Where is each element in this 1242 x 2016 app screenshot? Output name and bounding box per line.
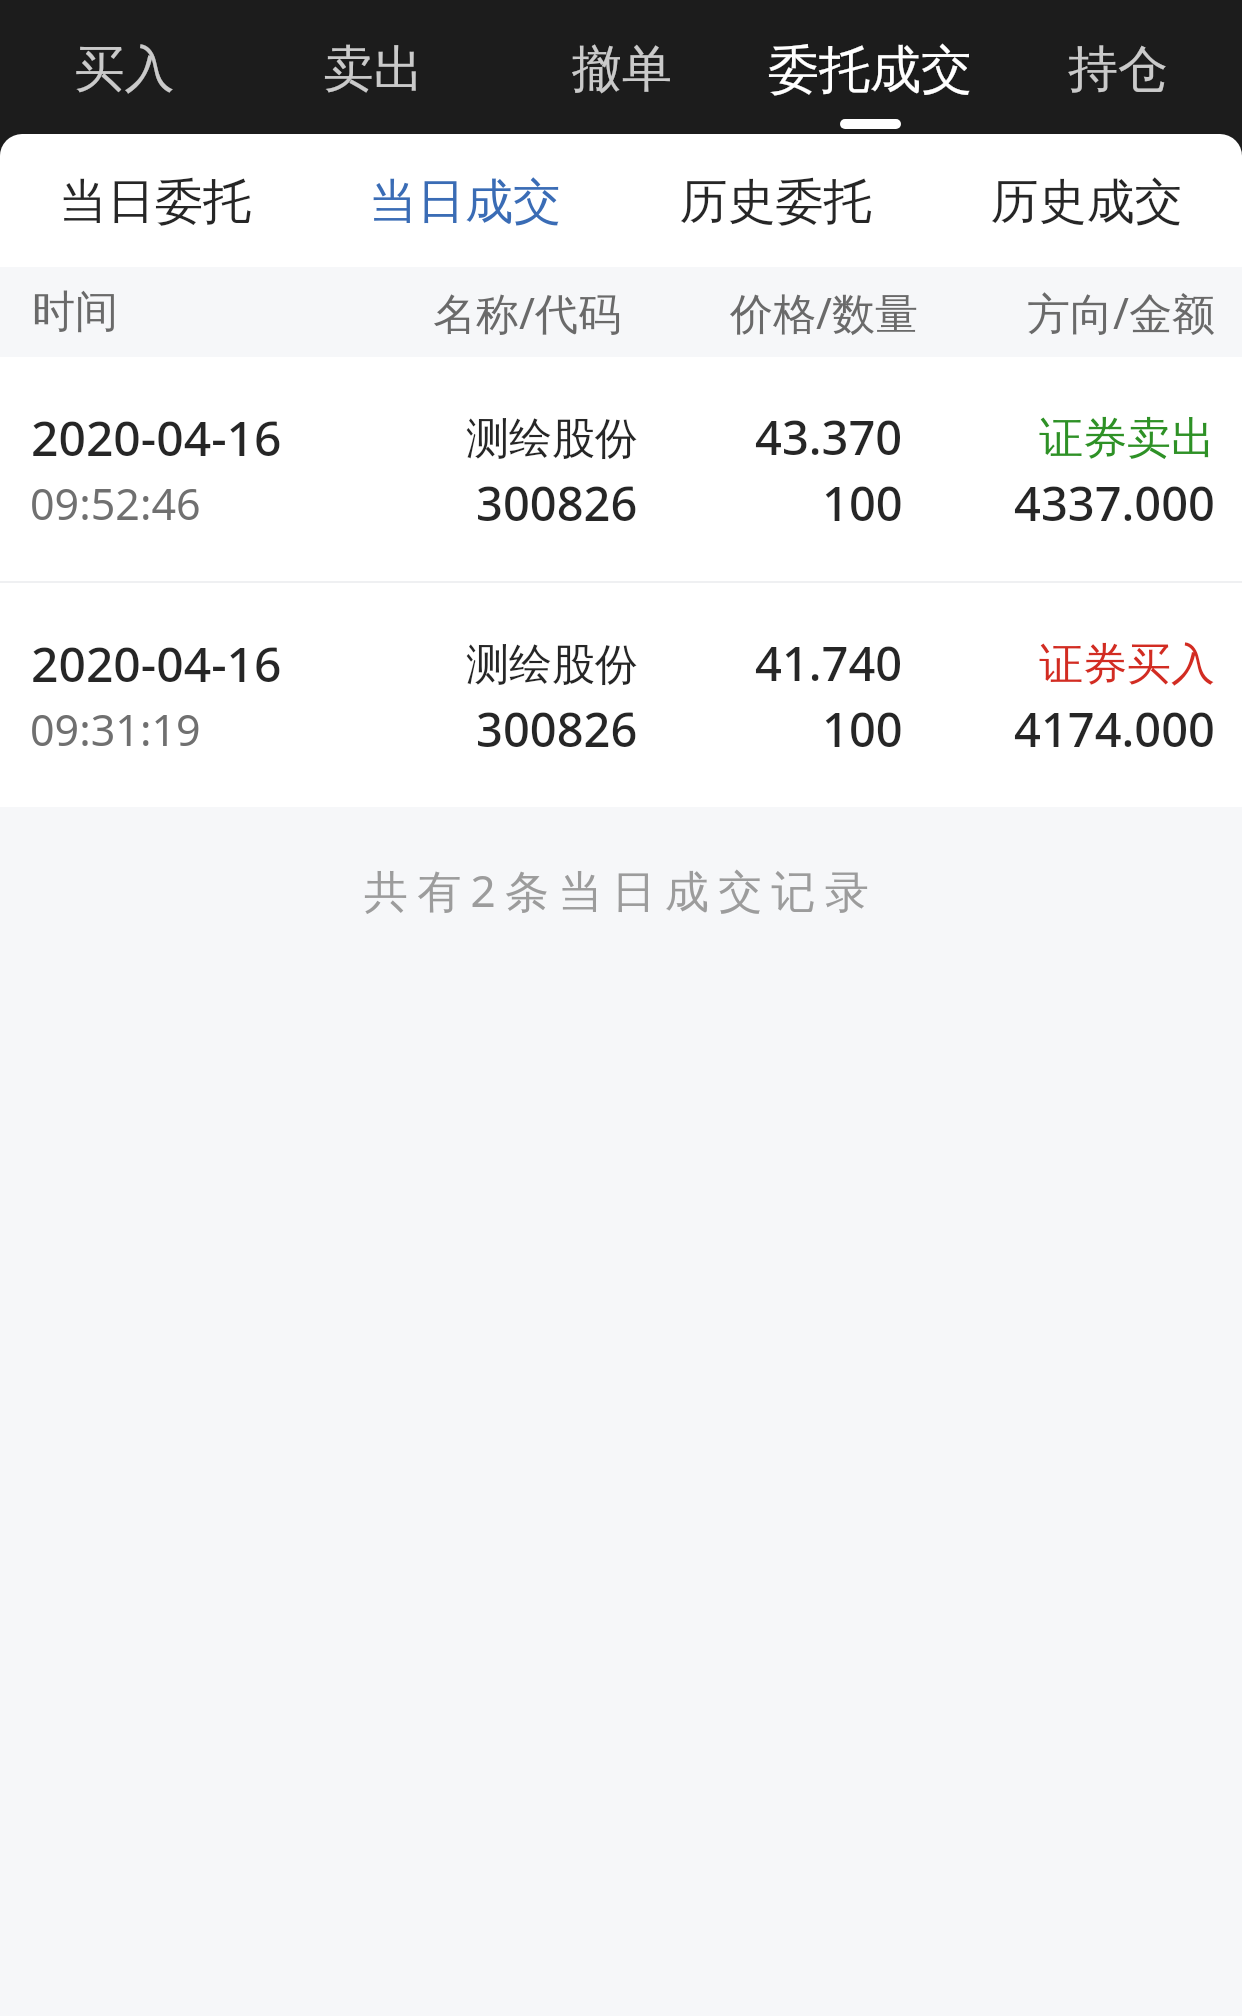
button[interactable]: 当日成交 [310, 134, 620, 267]
staticText: 买入 [0, 38, 249, 101]
staticText: 300826 [476, 471, 638, 535]
staticText: 4337.000 [1014, 471, 1215, 535]
button[interactable]: 当日委托 [0, 134, 310, 267]
staticText: 100 [822, 697, 903, 761]
staticText: 证券买入 [1039, 637, 1215, 692]
button[interactable]: 持仓 [994, 0, 1242, 134]
staticText: 测绘股份 [466, 412, 638, 466]
button[interactable]: 历史成交 [931, 134, 1242, 267]
staticText: 300826 [476, 697, 638, 761]
staticText: 时间 [32, 285, 118, 339]
button[interactable]: 买入 [0, 0, 249, 134]
staticText: 2020-04-16 [31, 631, 282, 696]
staticText: 41.740 [755, 631, 903, 695]
staticText: 历史委托 [620, 172, 931, 232]
other: Selected tab indicator [840, 119, 901, 129]
button[interactable]: 2020-04-16 [0, 357, 1242, 581]
staticText: 价格/数量 [730, 283, 918, 342]
staticText: 43.370 [755, 405, 903, 469]
staticText: 持仓 [994, 38, 1242, 101]
staticText: 卖出 [249, 38, 498, 101]
staticText: 测绘股份 [466, 638, 638, 692]
button[interactable]: 卖出 [249, 0, 498, 134]
staticText: 共有2条当日成交记录 [364, 860, 879, 920]
staticText: 当日成交 [310, 172, 620, 232]
staticText: 撤单 [498, 38, 746, 101]
button[interactable]: 2020-04-16 [0, 583, 1242, 807]
staticText: 09:52:46 [30, 474, 201, 533]
staticText: 委托成交 [746, 38, 994, 102]
staticText: 历史成交 [931, 172, 1242, 232]
staticText: 名称/代码 [433, 283, 621, 342]
staticText: 方向/金额 [1027, 283, 1215, 342]
staticText: 09:31:19 [30, 700, 201, 759]
staticText: 证券卖出 [1039, 411, 1215, 466]
staticText: 100 [822, 471, 903, 535]
button[interactable]: 委托成交 [746, 0, 994, 134]
button[interactable]: 撤单 [498, 0, 746, 134]
staticText: 2020-04-16 [31, 405, 282, 470]
staticText: 当日委托 [0, 172, 310, 232]
button[interactable]: 历史委托 [620, 134, 931, 267]
staticText: 4174.000 [1014, 697, 1215, 761]
